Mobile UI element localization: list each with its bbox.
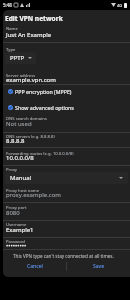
- staticText: Username: [6, 222, 27, 228]
- staticText: Type: [6, 47, 16, 53]
- staticText: Cancel: [27, 263, 43, 270]
- button[interactable]: Save: [67, 260, 130, 273]
- staticText: Edit VPN network: [5, 14, 63, 23]
- staticText: •••••••••: [6, 242, 27, 250]
- staticText: DNS servers (e.g. 8.8.8.8): [6, 134, 55, 140]
- staticText: Proxy host name: [6, 188, 40, 194]
- staticText: Server address: [6, 73, 36, 79]
- button[interactable]: PPP encryption (MPPE): [8, 86, 130, 97]
- button[interactable]: Show advanced options: [8, 102, 130, 113]
- staticText: 8.8.8.8: [6, 137, 25, 145]
- staticText: This VPN type can't stay connected at al…: [13, 253, 114, 259]
- staticText: Manual: [10, 174, 32, 182]
- staticText: Not used: [6, 120, 32, 128]
- staticText: PPTP: [10, 54, 25, 62]
- other: Show advanced options: [8, 105, 13, 110]
- staticText: proxy.example.com: [6, 191, 61, 199]
- staticText: Forwarding routes (e.g. 10.0.0.0/8): [6, 151, 74, 157]
- staticText: DNS search domains: [6, 116, 47, 122]
- button[interactable]: PPTP: [5, 52, 36, 64]
- staticText: Proxy: [6, 167, 17, 173]
- staticText: Show advanced options: [15, 104, 74, 111]
- staticText: 4G: [117, 3, 123, 8]
- other: PPP encryption (MPPE): [8, 89, 13, 94]
- staticText: PPP encryption (MPPE): [15, 88, 72, 95]
- staticText: Save: [93, 263, 105, 270]
- staticText: Example1: [6, 226, 34, 234]
- staticText: 10.0.0.0/8: [6, 154, 34, 162]
- staticText: Name: [6, 26, 18, 32]
- staticText: Password: [6, 239, 25, 245]
- button[interactable]: Manual: [5, 172, 128, 184]
- staticText: 5:48: [3, 2, 12, 8]
- staticText: Just An Example: [6, 31, 52, 39]
- staticText: 8080: [6, 209, 20, 217]
- button[interactable]: Cancel: [3, 260, 66, 273]
- staticText: example.vpn.com: [6, 76, 56, 84]
- staticText: Proxy port: [6, 205, 27, 211]
